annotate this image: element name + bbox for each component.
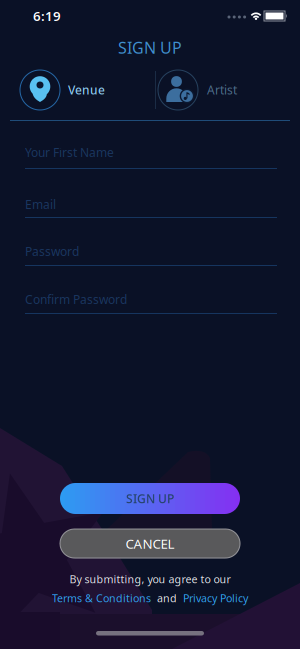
button[interactable]: Email bbox=[0, 190, 300, 220]
staticText: and bbox=[157, 591, 177, 605]
staticText: Venue bbox=[68, 82, 105, 98]
staticText: By submitting, you agree to our bbox=[69, 572, 230, 586]
button[interactable]: Your First Name bbox=[0, 138, 300, 171]
staticText: Privacy Policy bbox=[183, 591, 248, 605]
button[interactable]: Terms & Conditions bbox=[52, 591, 151, 605]
staticText: Confirm Password bbox=[25, 291, 127, 307]
button[interactable]: Password bbox=[0, 237, 300, 268]
staticText: SIGN UP bbox=[118, 37, 182, 58]
staticText: Email bbox=[25, 196, 56, 212]
staticText: 6:19 bbox=[33, 7, 61, 25]
staticText: SIGN UP bbox=[126, 490, 174, 506]
staticText: Artist bbox=[207, 82, 237, 98]
staticText: Password bbox=[25, 243, 79, 259]
button[interactable]: CANCEL bbox=[60, 529, 240, 558]
button[interactable]: Venue bbox=[0, 70, 150, 110]
button[interactable]: Privacy Policy bbox=[183, 591, 248, 605]
button[interactable]: Confirm Password bbox=[0, 285, 300, 316]
button[interactable]: SIGN UP bbox=[60, 483, 240, 514]
staticText: Your First Name bbox=[25, 144, 114, 160]
staticText: CANCEL bbox=[125, 535, 174, 552]
button[interactable]: Artist bbox=[150, 70, 300, 110]
staticText: Terms & Conditions bbox=[52, 591, 151, 605]
